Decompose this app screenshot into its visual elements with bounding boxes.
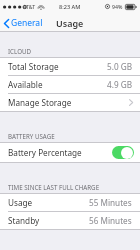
staticText: 4.9 GB — [107, 79, 132, 90]
button[interactable]: Available — [0, 76, 140, 93]
staticText: ICLOUD — [8, 47, 31, 55]
staticText: General — [11, 17, 43, 29]
staticText: Usage — [8, 197, 33, 208]
staticText: AT&T — [23, 3, 36, 10]
button[interactable]: Manage Storage — [0, 94, 140, 111]
staticText: Standby — [8, 215, 40, 226]
button[interactable]: Total Storage — [0, 58, 140, 75]
button[interactable]: Battery Percentage toggle, on — [112, 146, 134, 159]
staticText: 8:23 AM — [59, 3, 81, 11]
button[interactable]: General — [0, 14, 47, 32]
staticText: BATTERY USAGE — [8, 132, 55, 140]
staticText: Available — [8, 79, 43, 90]
button[interactable]: Usage — [0, 194, 140, 211]
staticText: Battery Percentage — [8, 147, 82, 158]
staticText: TIME SINCE LAST FULL CHARGE — [8, 183, 100, 191]
staticText: Usage — [56, 17, 84, 29]
staticText: 5.0 GB — [107, 61, 132, 72]
staticText: 94% — [112, 3, 123, 10]
staticText: 55 Minutes — [89, 197, 132, 208]
staticText: Total Storage — [8, 61, 59, 72]
staticText: 56 Minutes — [89, 215, 132, 226]
staticText: Manage Storage — [8, 97, 72, 108]
button[interactable]: Standby — [0, 212, 140, 229]
